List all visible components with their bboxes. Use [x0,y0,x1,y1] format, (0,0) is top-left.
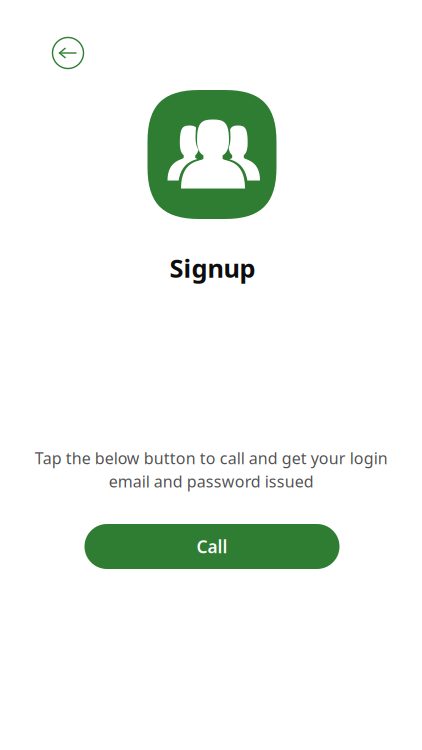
button[interactable]: Call [84,524,339,569]
staticText: Call [196,535,227,558]
button[interactable]: Back [46,31,90,75]
staticText: Tap the below button to call and get you… [34,447,387,492]
staticText: Signup [169,251,255,285]
